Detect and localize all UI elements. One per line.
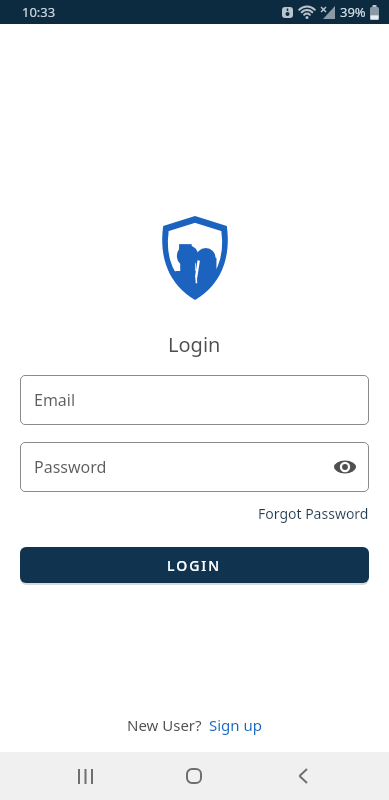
staticText: New User?: [127, 715, 202, 735]
button[interactable]: [65, 756, 105, 796]
staticText: Email: [34, 389, 76, 411]
staticText: Sign up: [209, 715, 262, 735]
staticText: LOGIN: [167, 556, 222, 575]
button[interactable]: [174, 756, 214, 796]
button[interactable]: [283, 756, 323, 796]
staticText: Password: [34, 456, 107, 478]
button[interactable]: Email: [20, 375, 369, 425]
staticText: Login: [168, 331, 221, 358]
staticText: Forgot Password: [258, 504, 369, 523]
button[interactable]: Sign up: [209, 715, 262, 735]
staticText: 39%: [340, 3, 366, 21]
button[interactable]: Forgot Password: [258, 504, 369, 523]
button[interactable]: Password: [20, 442, 369, 492]
button[interactable]: LOGIN: [20, 547, 369, 583]
staticText: 10:33: [22, 3, 56, 21]
